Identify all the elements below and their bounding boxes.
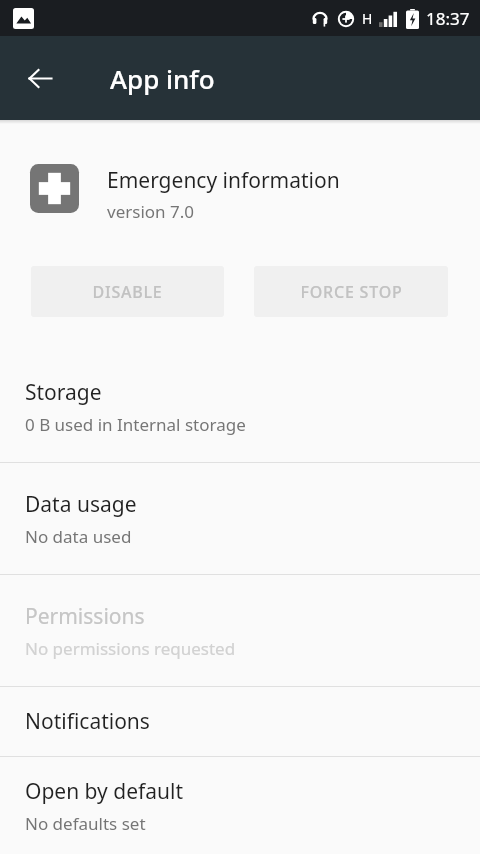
staticText: H <box>362 9 373 28</box>
staticText: Storage <box>25 378 102 407</box>
staticText: No permissions requested <box>25 637 236 660</box>
staticText: App info <box>110 61 215 96</box>
button[interactable]: Open by default <box>0 757 480 854</box>
button[interactable]: DISABLE <box>31 266 224 317</box>
staticText: version 7.0 <box>107 200 194 223</box>
staticText: Open by default <box>25 777 184 806</box>
button[interactable]: Notifications <box>0 687 480 756</box>
staticText: Permissions <box>25 602 145 631</box>
button[interactable]: Storage <box>0 351 480 462</box>
staticText: No data used <box>25 525 132 548</box>
staticText: 0 B used in Internal storage <box>25 413 246 436</box>
staticText: DISABLE <box>92 281 163 303</box>
staticText: Emergency information <box>107 166 340 195</box>
staticText: 18:37 <box>426 7 470 30</box>
button[interactable]: Data usage <box>0 463 480 574</box>
button[interactable]: Permissions <box>0 575 480 686</box>
button[interactable]: FORCE STOP <box>254 266 448 317</box>
staticText: FORCE STOP <box>300 281 403 303</box>
staticText: Data usage <box>25 490 137 519</box>
staticText: No defaults set <box>25 812 146 835</box>
staticText: Notifications <box>25 707 150 736</box>
button[interactable]: Back <box>16 54 64 102</box>
